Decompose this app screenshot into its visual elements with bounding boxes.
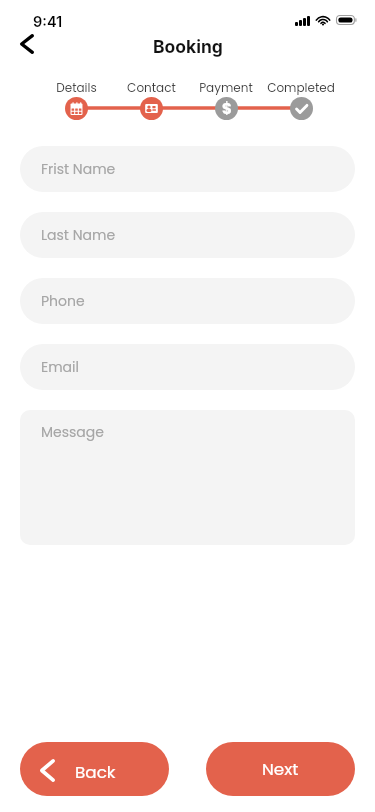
button[interactable]: Frist Name — [20, 146, 355, 192]
staticText: Payment — [199, 79, 253, 96]
staticText: Phone — [41, 291, 85, 311]
button[interactable]: Back — [20, 742, 169, 796]
button[interactable]: Back — [7, 29, 47, 69]
staticText: Last Name — [41, 225, 116, 245]
staticText: $ — [222, 98, 232, 119]
staticText: Details — [56, 79, 97, 96]
button[interactable]: Details — [34, 70, 118, 120]
staticText: Message — [41, 422, 104, 442]
staticText: Back — [75, 760, 116, 784]
staticText: Next — [262, 757, 299, 781]
button[interactable]: Completed — [259, 70, 343, 120]
button[interactable]: Next — [206, 742, 355, 796]
button[interactable]: Phone — [20, 278, 355, 324]
staticText: Completed — [267, 79, 335, 96]
button[interactable]: Contact — [109, 70, 193, 120]
staticText: Email — [41, 357, 79, 377]
button[interactable]: Email — [20, 344, 355, 390]
staticText: 9:41 — [33, 13, 63, 31]
button[interactable]: Payment — [184, 70, 268, 120]
staticText: Booking — [153, 36, 223, 57]
button[interactable]: Message — [20, 410, 355, 545]
staticText: Contact — [127, 79, 176, 96]
staticText: Frist Name — [41, 159, 116, 179]
button[interactable]: Last Name — [20, 212, 355, 258]
